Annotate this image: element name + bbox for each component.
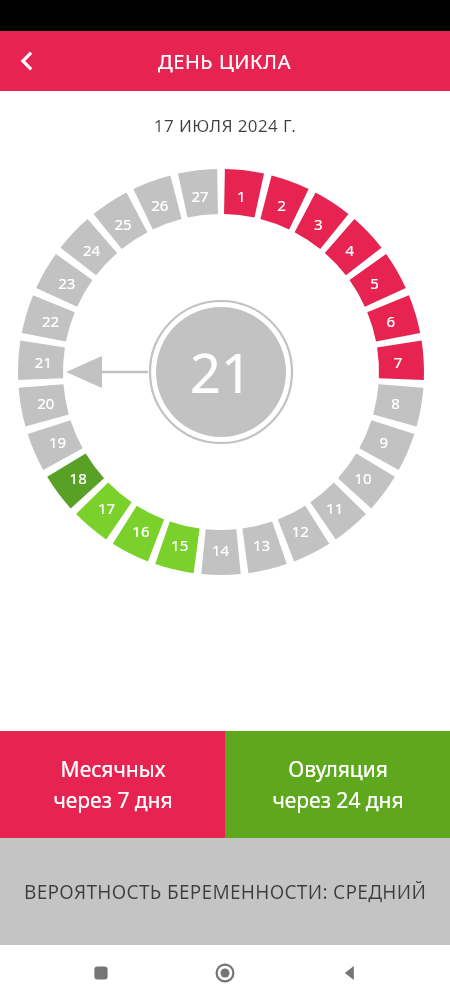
staticText: 17 ИЮЛЯ 2024 Г. [0,114,450,137]
button[interactable]: Home [202,950,248,996]
button[interactable]: ВЕРОЯТНОСТЬ БЕРЕМЕННОСТИ: СРЕДНИЙ [0,838,450,945]
button[interactable]: Месячных через 7 дня [0,731,225,838]
button[interactable]: Recent apps [78,950,124,996]
button[interactable]: Back [0,34,54,88]
staticText: ДЕНЬ ЦИКЛА [158,48,292,75]
button[interactable]: Овуляция через 24 дня [225,731,450,838]
button[interactable]: Back [326,950,372,996]
staticText: Месячных через 7 дня [53,755,173,814]
button[interactable]: Cycle day 21 of 27 [0,137,450,597]
staticText: ВЕРОЯТНОСТЬ БЕРЕМЕННОСТИ: СРЕДНИЙ [24,879,427,905]
staticText: Овуляция через 24 дня [272,755,404,814]
